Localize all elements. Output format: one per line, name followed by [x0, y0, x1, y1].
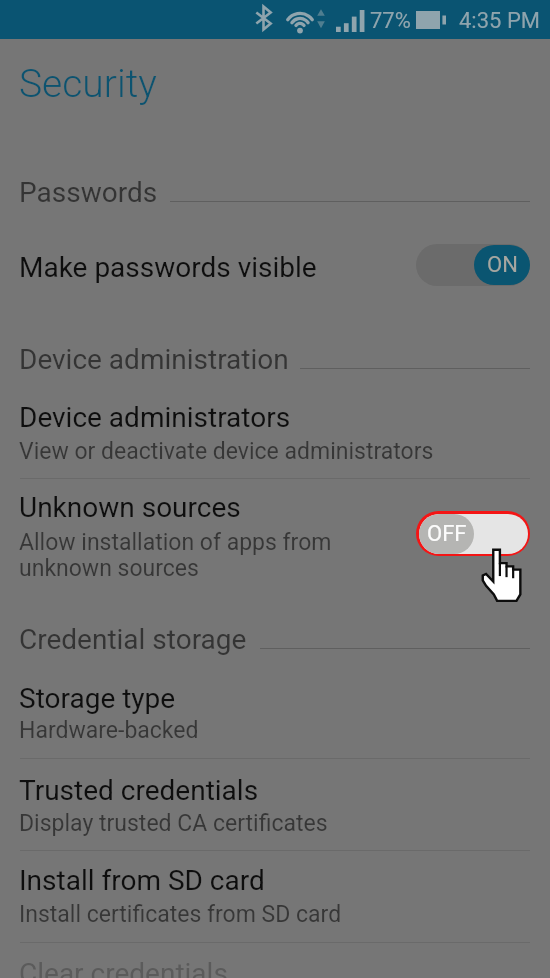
button[interactable]: Unknown sources [0, 478, 550, 592]
staticText: Clear credentials [19, 957, 228, 978]
staticText: Device administration [19, 343, 289, 376]
staticText: Security [19, 61, 157, 107]
staticText: View or deactivate device administrators [19, 438, 434, 465]
staticText: Install certificates from SD card [19, 901, 342, 928]
staticText: Display trusted CA certificates [19, 810, 328, 837]
button[interactable]: Install from SD card [0, 850, 550, 942]
staticText: Make passwords visible [19, 251, 317, 284]
other: Wi-Fi [285, 9, 315, 31]
staticText: ON [487, 252, 518, 278]
button[interactable]: Clear credentials [0, 943, 550, 978]
other: Battery 77 percent [416, 11, 446, 29]
staticText: Install from SD card [19, 864, 265, 897]
staticText: Trusted credentials [19, 774, 259, 807]
staticText: Hardware-backed [19, 717, 199, 744]
staticText: 77% [370, 8, 411, 34]
staticText: Passwords [19, 176, 158, 209]
other: Mobile signal strength [336, 10, 363, 32]
button[interactable]: Trusted credentials [0, 758, 550, 850]
staticText: Device administrators [19, 401, 291, 434]
staticText: OFF [427, 521, 467, 547]
button[interactable]: Device administrators [0, 392, 550, 478]
staticText: Allow installation of apps from unknown … [19, 529, 332, 581]
other: Bluetooth [256, 6, 271, 30]
staticText: 4:35 PM [459, 8, 540, 34]
staticText: Storage type [19, 682, 176, 715]
staticText: Unknown sources [19, 491, 241, 524]
button[interactable]: Storage type [0, 672, 550, 758]
staticText: Credential storage [19, 623, 247, 656]
button[interactable]: Make passwords visible [0, 225, 550, 305]
